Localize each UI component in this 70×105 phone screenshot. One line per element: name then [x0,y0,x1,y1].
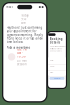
staticText: Confirm [54,77,60,79]
staticText: 9:41 [6,5,13,9]
staticText: Confirm the new slot and [50,46,66,47]
staticText: 45 min session [17,59,27,66]
button[interactable]: Confirm [48,77,66,80]
button[interactable]: Tue 14 Oct · 10:30 [6,51,31,63]
staticText: Tue 14 Oct · 10:30 [17,48,27,58]
staticText: we will text a reminder [50,48,63,50]
staticText: Today 9:41 AM [21,14,28,24]
staticText: Pick a new time [6,46,30,49]
staticText: Hey there! Just confirming your appointm… [6,26,42,44]
button[interactable]: Notes [48,69,66,75]
staticText: Name [49,59,53,61]
button[interactable]: Name [48,57,66,63]
staticText: Booking details [50,37,63,44]
button[interactable]: Phone [48,63,66,69]
staticText: one hour before. [50,50,62,52]
staticText: Notes [49,71,53,73]
